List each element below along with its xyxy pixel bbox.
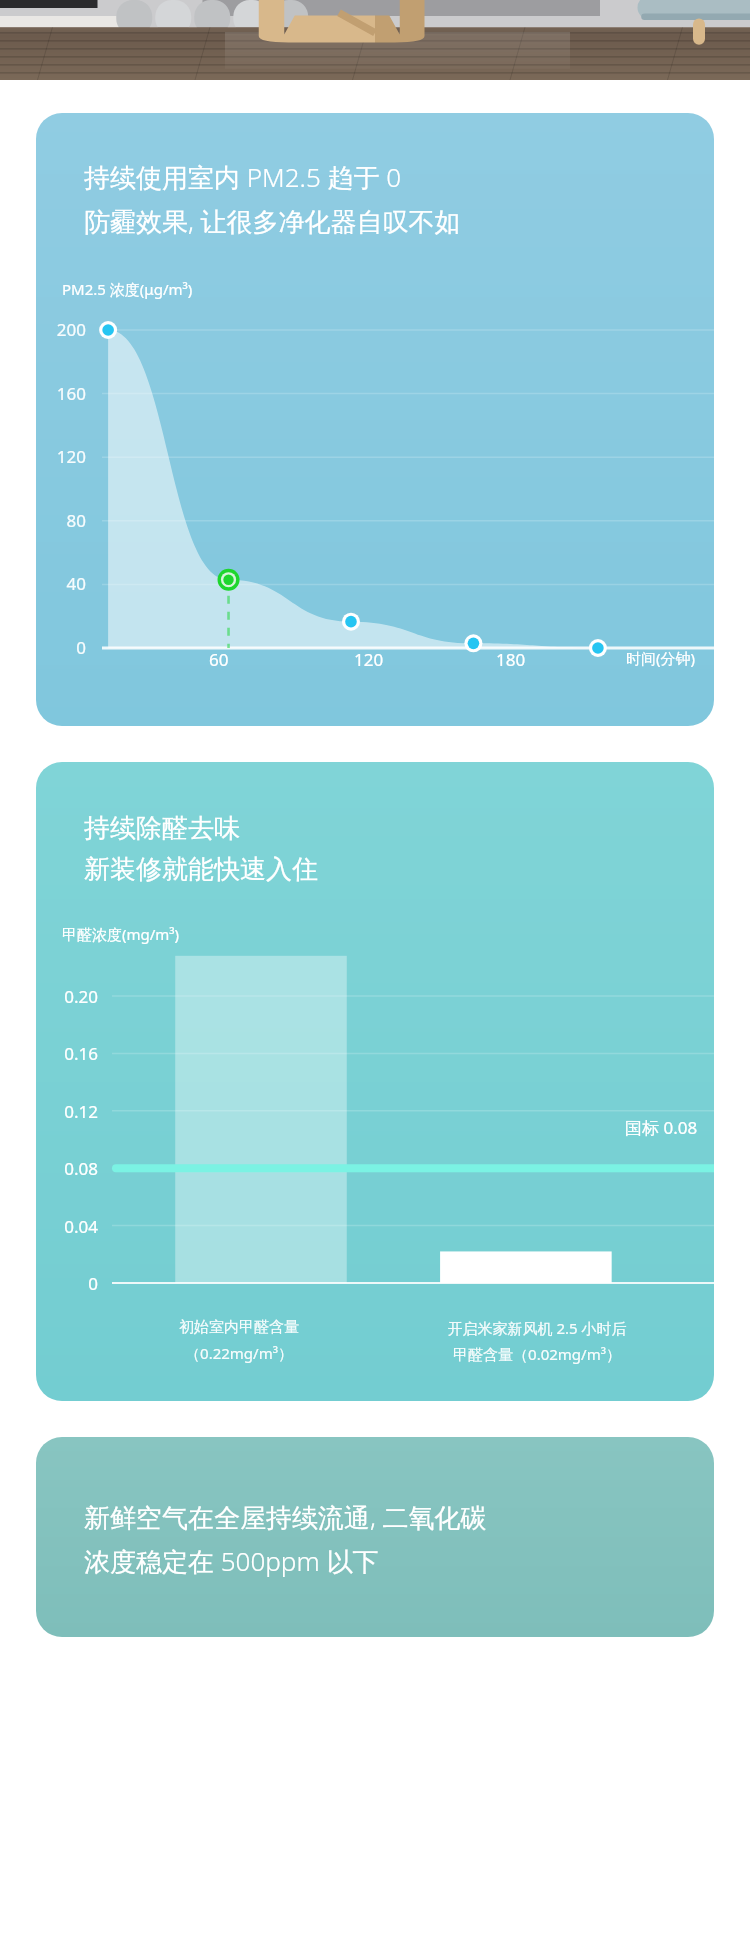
staticText: 180: [496, 648, 526, 671]
staticText: 时间(分钟): [626, 648, 696, 668]
button[interactable]: 新鲜空气在全屋持续流通, 二氧化碳: [36, 1437, 714, 1637]
staticText: 0.04: [36, 1215, 98, 1238]
staticText: 初始室内甲醛含量 （0.22mg/m³）: [112, 1318, 366, 1363]
staticText: 0: [36, 636, 86, 659]
staticText: PM2.5 浓度(μg/m³): [62, 279, 193, 299]
staticText: 持续除醛去味: [84, 812, 240, 845]
staticText: 0.12: [36, 1100, 98, 1123]
staticText: 新鲜空气在全屋持续流通, 二氧化碳: [84, 1499, 487, 1535]
staticText: 200: [36, 318, 86, 341]
staticText: 0.16: [36, 1042, 98, 1065]
staticText: 120: [36, 445, 86, 468]
staticText: 120: [354, 648, 384, 671]
staticText: 80: [36, 509, 86, 532]
staticText: 0: [36, 1272, 98, 1295]
staticText: 防霾效果, 让很多净化器自叹不如: [84, 203, 461, 239]
staticText: 浓度稳定在 500ppm 以下: [84, 1543, 379, 1579]
staticText: 160: [36, 382, 86, 405]
button[interactable]: 持续使用室内 PM2.5 趋于 0: [36, 113, 714, 726]
staticText: 持续使用室内 PM2.5 趋于 0: [84, 159, 402, 195]
staticText: 甲醛浓度(mg/m³): [62, 924, 180, 944]
staticText: 60: [209, 648, 229, 671]
staticText: 40: [36, 572, 86, 595]
staticText: 国标 0.08: [625, 1116, 698, 1139]
staticText: 新装修就能快速入住: [84, 853, 318, 886]
staticText: 开启米家新风机 2.5 小时后 甲醛含量（0.02mg/m³）: [366, 1318, 708, 1364]
staticText: 0.08: [36, 1157, 98, 1180]
staticText: 0.20: [36, 985, 98, 1008]
other: Living room photo: [0, 0, 750, 80]
button[interactable]: 持续除醛去味: [36, 762, 714, 1401]
